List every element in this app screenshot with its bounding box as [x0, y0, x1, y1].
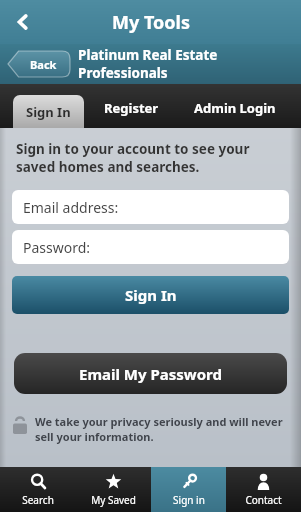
- staticText: Sign In: [26, 103, 71, 121]
- staticText: Email My Password: [79, 364, 222, 384]
- staticText: Admin Login: [194, 99, 276, 117]
- button[interactable]: Admin Login: [182, 95, 287, 120]
- button[interactable]: Register: [92, 95, 170, 120]
- button[interactable]: My Saved: [76, 467, 151, 512]
- button[interactable]: Back: [0, 0, 46, 44]
- button[interactable]: Sign In: [12, 276, 289, 314]
- staticText: Register: [104, 99, 159, 117]
- staticText: Sign In: [125, 285, 177, 305]
- button[interactable]: Sign In: [13, 95, 84, 128]
- button[interactable]: Contact: [226, 467, 301, 512]
- staticText: Password:: [23, 238, 91, 257]
- staticText: Back: [30, 57, 57, 72]
- staticText: My Tools: [112, 10, 190, 35]
- button[interactable]: Email My Password: [14, 353, 287, 394]
- button[interactable]: Password:: [12, 230, 289, 264]
- button[interactable]: Search: [0, 467, 76, 512]
- staticText: We take your privacy seriously and will …: [35, 414, 283, 444]
- staticText: Platinum Real Estate Professionals: [78, 46, 301, 82]
- staticText: Email address:: [23, 198, 119, 217]
- staticText: Sign in to your account to see your save…: [16, 140, 250, 176]
- button[interactable]: Back: [8, 51, 70, 77]
- staticText: My Saved: [91, 493, 136, 507]
- staticText: Sign in: [173, 493, 205, 507]
- staticText: Contact: [245, 493, 282, 507]
- staticText: Search: [22, 493, 54, 507]
- button[interactable]: Sign in: [151, 467, 226, 512]
- button[interactable]: Email address:: [12, 190, 289, 224]
